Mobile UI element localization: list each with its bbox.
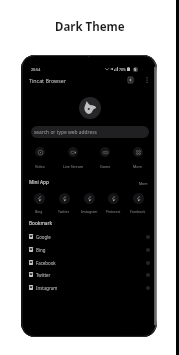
staticText: search or type web address (34, 129, 97, 136)
button[interactable]: Bing (23, 243, 155, 256)
button[interactable]: Google (23, 230, 155, 243)
staticText: Tincat Browser (29, 77, 66, 84)
button[interactable]: Instagram (23, 281, 155, 294)
button[interactable]: Twitter (23, 268, 155, 281)
staticText: 78% (119, 67, 126, 72)
button[interactable] (24, 147, 56, 171)
button[interactable] (57, 147, 89, 171)
staticText: Video (35, 164, 45, 169)
staticText: Instagram (36, 285, 58, 291)
button[interactable] (77, 193, 101, 215)
staticText: Facebook (130, 209, 146, 214)
button[interactable] (101, 193, 125, 215)
staticText: Bing (36, 247, 46, 253)
button[interactable]: More options (141, 74, 153, 86)
staticText: More (139, 181, 148, 186)
staticText: Twitter (58, 209, 70, 214)
button[interactable] (126, 193, 150, 215)
staticText: Twitter (36, 272, 51, 278)
staticText: 20:54 (31, 67, 41, 72)
button[interactable] (27, 193, 51, 215)
button[interactable]: Tincat home (79, 97, 101, 119)
staticText: Facebook (36, 260, 56, 266)
staticText: Mini App (29, 179, 49, 185)
button[interactable]: Facebook (23, 256, 155, 269)
staticText: N (134, 68, 137, 72)
button[interactable]: More (133, 177, 153, 189)
staticText: Google (36, 234, 51, 240)
button[interactable]: Tabs (124, 74, 136, 86)
staticText: Dark Theme (55, 19, 125, 35)
staticText: Pinterest (106, 209, 121, 214)
staticText: Live Stream (63, 164, 84, 169)
staticText: Bing (35, 209, 43, 214)
staticText: Game (100, 164, 111, 169)
button[interactable]: Search or type web address (31, 126, 149, 138)
staticText: Instagram (81, 209, 98, 214)
button[interactable] (52, 193, 76, 215)
staticText: Bookmark (29, 220, 53, 226)
button[interactable] (122, 147, 154, 171)
staticText: More (133, 164, 143, 169)
button[interactable] (89, 147, 121, 171)
